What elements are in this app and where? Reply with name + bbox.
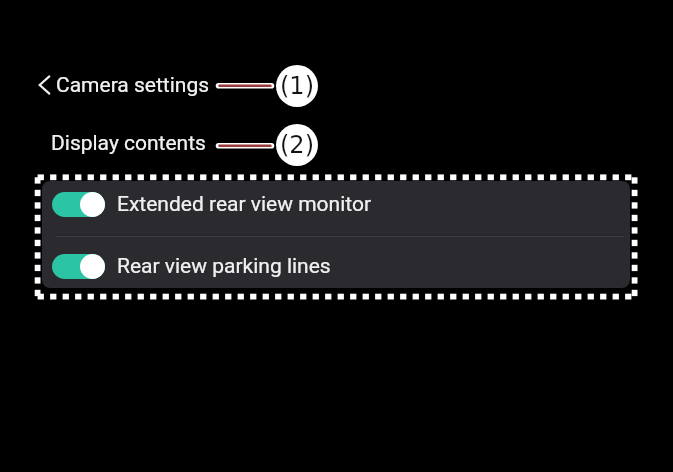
staticText: Display contents [51,131,206,156]
staticText: Extended rear view monitor [117,192,372,217]
button[interactable]: Extended rear view monitor [42,181,630,236]
staticText: (2) [280,131,314,159]
staticText: Rear view parking lines [117,254,331,279]
staticText: Camera settings [56,73,210,98]
button[interactable]: Back [32,69,210,101]
other: Back [32,69,56,101]
staticText: (1) [280,72,314,100]
button[interactable]: Rear view parking lines [42,237,630,288]
